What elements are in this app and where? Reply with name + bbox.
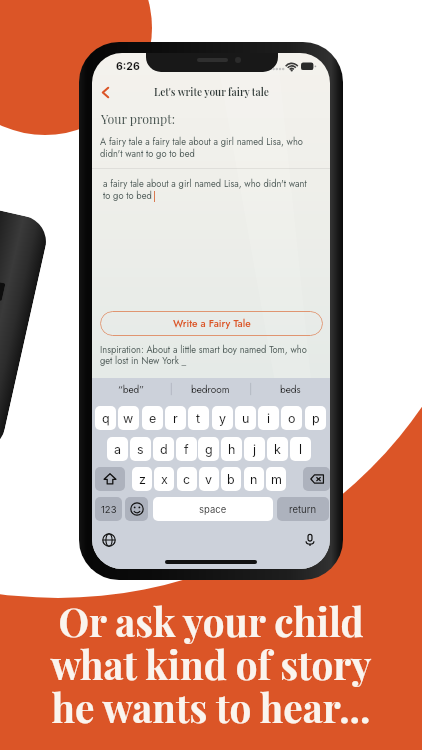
staticText: get lost in New York _ (100, 354, 187, 367)
button[interactable]: beds (251, 378, 330, 400)
staticText: Or ask your child what kind of story he … (0, 595, 422, 733)
staticText: Let's write your fairy tale (154, 85, 269, 99)
staticText: space (199, 504, 227, 515)
staticText: Write a Fairy Tale (173, 316, 251, 331)
staticText: h (228, 442, 236, 457)
button[interactable]: Emoji (125, 497, 148, 521)
button[interactable]: k (267, 437, 288, 461)
staticText: e (149, 411, 157, 426)
button[interactable]: e (142, 406, 163, 430)
button[interactable]: d (153, 437, 174, 461)
staticText: t (196, 411, 201, 426)
staticText: beds (280, 382, 301, 396)
button[interactable]: x (154, 467, 174, 491)
button[interactable]: bedroom (171, 378, 250, 400)
button[interactable]: i (258, 406, 279, 430)
staticText: w (123, 411, 134, 426)
button[interactable]: w (118, 406, 139, 430)
staticText: p (312, 411, 320, 426)
button[interactable]: f (176, 437, 197, 461)
staticText: return (289, 504, 317, 515)
button[interactable]: v (199, 467, 219, 491)
button[interactable]: space (153, 497, 273, 521)
button[interactable]: q (95, 406, 116, 430)
button[interactable]: Back (94, 81, 116, 103)
staticText: s (137, 442, 144, 457)
button[interactable]: m (266, 467, 286, 491)
staticText: o (288, 411, 296, 426)
staticText: Your prompt: (101, 111, 175, 128)
button[interactable]: l (290, 437, 311, 461)
button[interactable]: Dictate (298, 528, 322, 552)
staticText: a (114, 442, 122, 457)
button[interactable]: Backspace (303, 467, 330, 491)
staticText: q (102, 411, 110, 426)
staticText: u (242, 411, 250, 426)
button[interactable]: z (132, 467, 152, 491)
staticText: k (274, 442, 281, 457)
button[interactable]: n (244, 467, 264, 491)
staticText: z (139, 472, 146, 487)
button[interactable]: c (177, 467, 197, 491)
staticText: r (173, 411, 178, 426)
staticText: v (205, 472, 213, 487)
staticText: i (267, 411, 271, 426)
staticText: bedroom (191, 382, 230, 396)
staticText: d (160, 442, 168, 457)
staticText: 6:26 (116, 60, 140, 73)
button[interactable]: s (130, 437, 151, 461)
button[interactable]: p (305, 406, 326, 430)
button[interactable]: h (221, 437, 242, 461)
staticText: a fairy tale about a girl named Lisa, wh… (103, 177, 307, 190)
button[interactable]: j (244, 437, 265, 461)
button[interactable]: y (212, 406, 233, 430)
staticText: x (161, 472, 168, 487)
button[interactable]: t (188, 406, 209, 430)
staticText: c (183, 472, 191, 487)
staticText: didn't want to go to bed (100, 147, 195, 160)
staticText: Inspiration: About a little smart boy na… (100, 343, 307, 356)
button[interactable]: Write a Fairy Tale (100, 311, 323, 336)
button[interactable]: 123 (95, 497, 122, 521)
staticText: l (299, 442, 303, 457)
button[interactable]: “bed” (92, 378, 171, 400)
staticText: f (184, 442, 189, 457)
staticText: m (271, 472, 282, 487)
button[interactable]: o (281, 406, 302, 430)
button[interactable]: Change keyboard (97, 528, 121, 552)
staticText: y (219, 411, 227, 426)
button[interactable]: a (107, 437, 128, 461)
staticText: 123 (101, 504, 117, 515)
button[interactable]: g (198, 437, 219, 461)
staticText: j (253, 442, 257, 457)
button[interactable]: b (221, 467, 241, 491)
staticText: b (227, 472, 235, 487)
button[interactable]: u (235, 406, 256, 430)
button[interactable]: Shift (95, 467, 125, 491)
button[interactable]: r (165, 406, 186, 430)
staticText: to go to bed (103, 189, 152, 202)
staticText: “bed” (118, 382, 145, 396)
button[interactable]: return (277, 497, 329, 521)
staticText: n (250, 472, 258, 487)
staticText: A fairy tale a fairy tale about a girl n… (100, 135, 303, 148)
staticText: g (205, 442, 213, 457)
